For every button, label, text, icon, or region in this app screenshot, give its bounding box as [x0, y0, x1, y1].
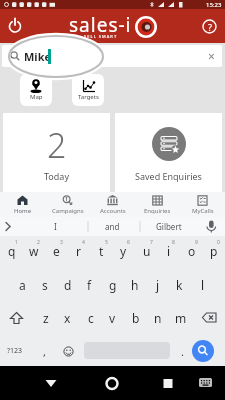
- button[interactable]: [156, 371, 180, 395]
- staticText: w: [29, 243, 39, 259]
- staticText: I: [54, 221, 57, 232]
- staticText: e: [53, 243, 60, 259]
- staticText: j: [156, 277, 160, 293]
- staticText: Gilbert: [156, 221, 182, 232]
- button[interactable]: Mike: [2, 45, 222, 67]
- button[interactable]: e: [46, 238, 67, 264]
- button[interactable]: Campaigns: [45, 192, 90, 217]
- button[interactable]: y: [113, 238, 134, 264]
- staticText: Today: [44, 170, 69, 182]
- staticText: 7: [150, 239, 153, 246]
- staticText: 15:23: [206, 1, 222, 9]
- staticText: h: [131, 277, 139, 293]
- staticText: p: [210, 243, 218, 259]
- button[interactable]: l: [192, 272, 213, 298]
- staticText: n: [154, 310, 162, 326]
- button[interactable]: MyCalls: [180, 192, 225, 217]
- staticText: 4: [82, 239, 85, 246]
- button[interactable]: c: [80, 305, 101, 331]
- button[interactable]: x: [57, 305, 78, 331]
- staticText: Map: [30, 93, 43, 101]
- button[interactable]: [58, 338, 79, 364]
- staticText: 2: [37, 239, 40, 246]
- button[interactable]: w: [23, 238, 44, 264]
- staticText: Accounts: [100, 207, 126, 215]
- button[interactable]: n: [147, 305, 168, 331]
- staticText: 6: [127, 239, 130, 246]
- button[interactable]: [39, 371, 63, 395]
- staticText: 0: [217, 239, 220, 246]
- button[interactable]: [196, 373, 216, 393]
- button[interactable]: Map: [20, 74, 52, 106]
- button[interactable]: ?: [202, 19, 217, 34]
- button[interactable]: Targets: [72, 74, 104, 106]
- button[interactable]: d: [57, 272, 78, 298]
- staticText: s: [42, 277, 48, 293]
- button[interactable]: [4, 305, 28, 331]
- button[interactable]: i: [158, 238, 179, 264]
- staticText: Home: [14, 207, 32, 215]
- staticText: y: [120, 243, 127, 259]
- button[interactable]: k: [169, 272, 190, 298]
- staticText: d: [64, 277, 72, 293]
- staticText: i: [167, 243, 171, 259]
- button[interactable]: Accounts: [90, 192, 135, 217]
- staticText: 1: [15, 239, 18, 246]
- staticText: m: [175, 310, 187, 326]
- button[interactable]: s: [34, 272, 55, 298]
- staticText: r: [76, 243, 81, 259]
- button[interactable]: u: [136, 238, 157, 264]
- button[interactable]: Saved Enquiries: [115, 113, 222, 192]
- staticText: k: [176, 277, 183, 293]
- button[interactable]: v: [102, 305, 123, 331]
- button[interactable]: b: [125, 305, 146, 331]
- staticText: and: [105, 221, 120, 232]
- button[interactable]: a: [12, 272, 33, 298]
- staticText: l: [201, 277, 205, 293]
- staticText: o: [188, 243, 196, 259]
- button[interactable]: h: [124, 272, 145, 298]
- staticText: 9: [195, 239, 198, 246]
- button[interactable]: t: [91, 238, 112, 264]
- button[interactable]: r: [68, 238, 89, 264]
- button[interactable]: [192, 340, 214, 362]
- staticText: 8: [172, 239, 175, 246]
- staticText: u: [143, 243, 151, 259]
- staticText: S E L L S M A R T: [84, 34, 117, 39]
- staticText: 2: [47, 122, 67, 168]
- staticText: g: [109, 277, 117, 293]
- button[interactable]: m: [170, 305, 191, 331]
- staticText: t: [99, 243, 104, 259]
- button[interactable]: ,: [34, 338, 55, 364]
- staticText: MyCalls: [192, 207, 214, 215]
- button[interactable]: q: [1, 238, 22, 264]
- button[interactable]: p: [203, 238, 224, 264]
- button[interactable]: ?123: [2, 338, 28, 364]
- button[interactable]: j: [147, 272, 168, 298]
- button[interactable]: [6, 17, 24, 35]
- button[interactable]: [100, 371, 124, 395]
- staticText: sales-i: [69, 12, 132, 38]
- button[interactable]: 2: [3, 113, 110, 192]
- staticText: ?: [208, 21, 212, 33]
- staticText: Mike: [24, 49, 52, 64]
- staticText: 5: [105, 239, 108, 246]
- button[interactable]: g: [102, 272, 123, 298]
- staticText: 3: [60, 239, 63, 246]
- button[interactable]: f: [79, 272, 100, 298]
- button[interactable]: Enquiries: [135, 192, 180, 217]
- button[interactable]: [196, 305, 222, 331]
- staticText: z: [43, 310, 49, 326]
- button[interactable]: .: [172, 338, 193, 364]
- staticText: a: [19, 277, 26, 293]
- staticText: v: [109, 310, 116, 326]
- staticText: x: [64, 310, 71, 326]
- button[interactable]: z: [35, 305, 56, 331]
- button[interactable]: Home: [0, 192, 45, 217]
- staticText: ×: [208, 48, 215, 64]
- staticText: Enquiries: [144, 207, 171, 215]
- staticText: c: [88, 310, 94, 326]
- staticText: Targets: [78, 93, 99, 101]
- button[interactable]: o: [181, 238, 202, 264]
